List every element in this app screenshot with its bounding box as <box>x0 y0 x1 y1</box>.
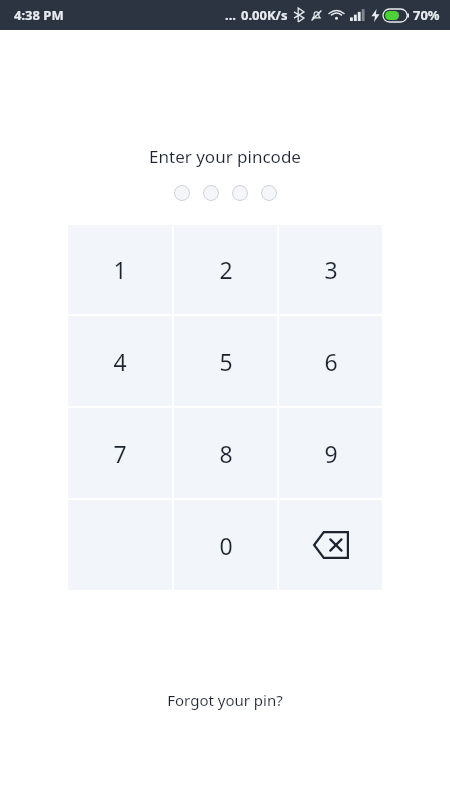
button[interactable]: 4 <box>68 316 172 406</box>
staticText: 4 <box>113 346 127 377</box>
staticText: 0 <box>219 530 233 561</box>
button[interactable]: 0 <box>174 500 277 590</box>
staticText: Forgot your pin? <box>167 690 283 710</box>
staticText: 4:38 PM <box>14 6 64 24</box>
staticText: 70% <box>413 6 440 24</box>
staticText: ... <box>225 6 236 24</box>
button[interactable]: 2 <box>174 225 277 314</box>
button[interactable]: 5 <box>174 316 277 406</box>
staticText: 9 <box>324 438 338 469</box>
button[interactable]: 9 <box>279 408 382 498</box>
staticText: 3 <box>324 254 338 285</box>
staticText: 0.00K/s <box>241 6 288 24</box>
button[interactable]: 6 <box>279 316 382 406</box>
button[interactable]: 3 <box>279 225 382 314</box>
staticText: 1 <box>113 254 127 285</box>
button[interactable]: 7 <box>68 408 172 498</box>
button[interactable]: 8 <box>174 408 277 498</box>
button[interactable]: Backspace <box>279 500 382 590</box>
button[interactable]: Forgot your pin? <box>151 682 299 718</box>
staticText: 5 <box>219 346 233 377</box>
staticText: 8 <box>219 438 233 469</box>
staticText: 2 <box>219 254 233 285</box>
staticText: 7 <box>113 438 127 469</box>
staticText: 6 <box>324 346 338 377</box>
staticText: Enter your pincode <box>149 145 301 168</box>
button[interactable]: 1 <box>68 225 172 314</box>
